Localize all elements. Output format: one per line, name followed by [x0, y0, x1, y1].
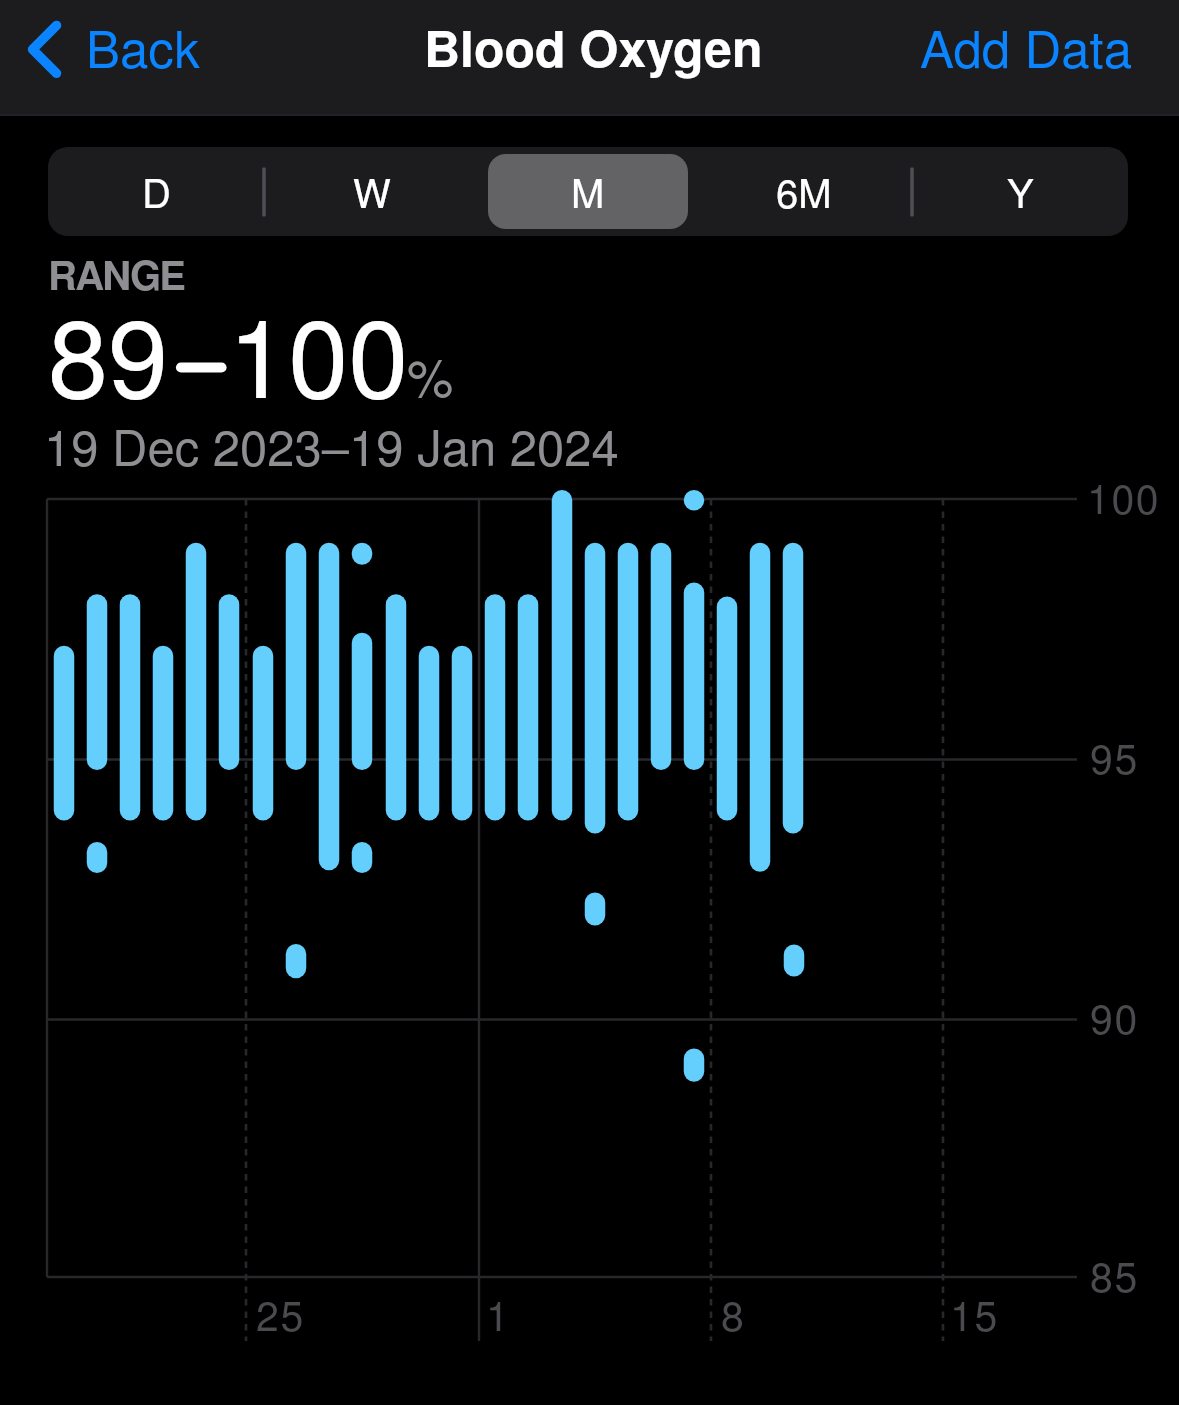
button[interactable]: Add Data [900, 0, 1179, 92]
staticText: M [571, 162, 605, 219]
staticText: 90 [1090, 987, 1139, 1046]
button[interactable]: 6M [704, 154, 904, 229]
other: Back [0, 0, 84, 116]
button[interactable]: Back [0, 0, 216, 116]
staticText: RANGE [48, 245, 185, 302]
staticText: % [407, 337, 454, 411]
staticText: Blood Oxygen [424, 11, 763, 83]
staticText: 100 [1087, 467, 1161, 526]
staticText: W [353, 162, 391, 219]
staticText: Add Data [920, 9, 1133, 82]
staticText: 8 [721, 1284, 746, 1343]
staticText: Back [86, 9, 200, 82]
button[interactable]: D [56, 154, 256, 229]
button[interactable]: M [488, 154, 688, 229]
button[interactable]: Y [920, 154, 1120, 229]
staticText: 25 [256, 1284, 305, 1343]
staticText: 95 [1090, 727, 1139, 786]
staticText: D [142, 162, 171, 219]
staticText: 85 [1090, 1245, 1139, 1304]
staticText: 89–100 [48, 274, 409, 429]
staticText: 1 [486, 1284, 511, 1343]
staticText: 15 [950, 1284, 999, 1343]
staticText: Y [1007, 162, 1034, 219]
staticText: 19 Dec 2023–19 Jan 2024 [44, 410, 619, 480]
staticText: 6M [776, 162, 832, 219]
button[interactable]: W [272, 154, 472, 229]
